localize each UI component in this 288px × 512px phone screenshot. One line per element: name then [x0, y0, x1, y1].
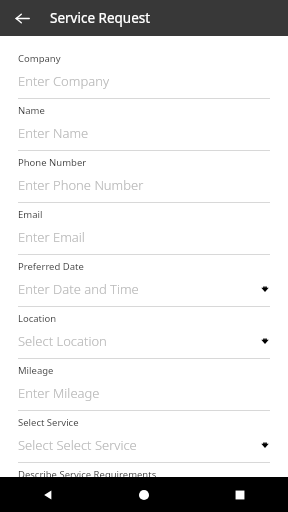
staticText: Enter Email [18, 228, 85, 246]
button[interactable]: Back [9, 5, 35, 31]
button[interactable]: Recent apps [192, 477, 288, 512]
button[interactable]: Location [18, 307, 270, 359]
staticText: Enter Mileage [18, 384, 100, 402]
staticText: Preferred Date [18, 260, 84, 273]
staticText: Enter Name [18, 124, 89, 142]
button[interactable]: Preferred Date [18, 255, 270, 307]
staticText: Describe Service Requirements [18, 468, 157, 477]
staticText: Select Location [18, 332, 107, 350]
button[interactable]: Mileage [18, 359, 270, 411]
staticText: Enter Company [18, 72, 109, 90]
staticText: Email [18, 208, 43, 221]
button[interactable]: Name [18, 99, 270, 151]
staticText: Service Request [50, 9, 151, 27]
staticText: Enter Phone Number [18, 176, 144, 194]
staticText: Company [18, 52, 61, 65]
button[interactable]: Email [18, 203, 270, 255]
button[interactable]: Select Service [18, 411, 270, 463]
staticText: Mileage [18, 364, 54, 377]
button[interactable]: Back [0, 477, 96, 512]
staticText: Location [18, 312, 57, 325]
staticText: Select Service [18, 416, 79, 429]
button[interactable]: Phone Number [18, 151, 270, 203]
staticText: Name [18, 104, 45, 117]
button[interactable]: Describe Service Requirements [18, 463, 270, 477]
button[interactable]: Home [96, 477, 192, 512]
staticText: Select Select Service [18, 436, 137, 454]
staticText: Phone Number [18, 156, 87, 169]
staticText: Enter Date and Time [18, 280, 139, 298]
button[interactable]: Company [18, 47, 270, 99]
